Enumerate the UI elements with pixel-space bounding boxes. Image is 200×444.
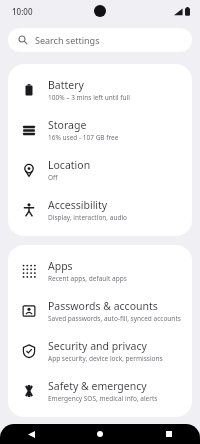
staticText: 10:00 [12, 6, 33, 17]
button[interactable]: Back [22, 425, 40, 443]
button[interactable]: Storage [8, 110, 192, 150]
button[interactable]: Home [91, 425, 109, 443]
staticText: Recent apps, default apps [48, 274, 127, 283]
staticText: Passwords & accounts [48, 299, 158, 313]
button[interactable]: Accessibility [8, 190, 192, 230]
staticText: Off [48, 173, 58, 182]
button[interactable]: Apps [8, 251, 192, 291]
staticText: Battery [48, 78, 84, 92]
staticText: 16% used - 107 GB free [48, 133, 119, 142]
staticText: Safety & emergency [48, 379, 147, 393]
staticText: Emergency SOS, medical info, alerts [48, 394, 158, 403]
button[interactable]: Passwords & accounts [8, 291, 192, 331]
button[interactable]: Recent apps [160, 425, 178, 443]
button[interactable]: Search settings [8, 28, 192, 52]
staticText: Security and privacy [48, 339, 147, 353]
button[interactable]: Security and privacy [8, 331, 192, 371]
staticText: Saved passwords, auto-fill, synced accou… [48, 314, 181, 323]
button[interactable]: Location [8, 150, 192, 190]
button[interactable]: Digital Wellbeing and parental controls [8, 432, 192, 438]
button[interactable]: Safety & emergency [8, 371, 192, 411]
staticText: Location [48, 158, 91, 172]
staticText: Apps [48, 259, 73, 273]
button[interactable]: Battery [8, 70, 192, 110]
staticText: 100% – 3 mins left until full [48, 93, 130, 102]
staticText: App security, device lock, permissions [48, 354, 163, 363]
staticText: Accessibility [48, 198, 108, 212]
staticText: Digital Wellbeing and parental controls [48, 432, 182, 438]
staticText: Display, interaction, audio [48, 213, 128, 222]
staticText: Search settings [35, 34, 100, 46]
staticText: Storage [48, 118, 87, 132]
